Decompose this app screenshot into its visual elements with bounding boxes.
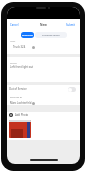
staticText: Marc Lochterfeld — [10, 101, 32, 105]
button[interactable]: Breakdown — [21, 32, 34, 38]
staticText: Submit — [66, 23, 75, 27]
button[interactable]: Submit — [66, 23, 75, 27]
staticText: Add Photo — [15, 113, 29, 117]
button[interactable]: Scheduled Service — [35, 32, 67, 38]
staticText: Truck 324 — [13, 45, 26, 49]
button[interactable]: Cancel — [10, 23, 19, 27]
staticText: Scheduled Service — [42, 34, 60, 37]
staticText: Cancel — [10, 23, 19, 27]
staticText: Asset — [10, 40, 16, 43]
staticText: New — [40, 23, 47, 27]
staticText: Details — [10, 62, 17, 65]
staticText: Out of Service — [9, 87, 27, 91]
staticText: Reported By — [10, 96, 23, 99]
staticText: Breakdown — [22, 34, 34, 37]
button[interactable]: Out of service toggle — [68, 87, 76, 92]
staticText: Left front light out — [10, 65, 34, 69]
button[interactable]: Add Photo — [9, 113, 29, 117]
